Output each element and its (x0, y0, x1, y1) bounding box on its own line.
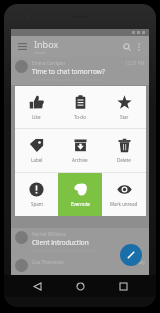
button[interactable]: Like (15, 86, 58, 128)
button[interactable]: Compose (120, 244, 142, 266)
staticText: Inbox (34, 38, 59, 50)
staticText: 12:37 PM (125, 60, 145, 66)
button[interactable]: Recents (116, 279, 130, 293)
button[interactable]: More options (133, 41, 144, 52)
button[interactable]: Star (102, 86, 146, 128)
staticText: Gmail (34, 50, 45, 55)
staticText: Label (31, 157, 43, 163)
button[interactable]: Label (15, 129, 58, 172)
button[interactable]: Emma Carrigan (15, 60, 145, 82)
staticText: Delete (117, 157, 131, 163)
staticText: Archive (72, 157, 88, 163)
button[interactable]: Harriet Williams (15, 231, 145, 253)
button[interactable]: Back (30, 279, 44, 293)
button[interactable]: Home (73, 279, 87, 293)
staticText: Star (120, 114, 129, 120)
button[interactable]: Lisa Thompson (15, 259, 145, 272)
staticText: To-do (74, 114, 86, 120)
staticText: Spam (31, 201, 43, 207)
button[interactable]: Archive (58, 129, 102, 172)
button[interactable]: Mark unread (102, 173, 146, 216)
staticText: Like (32, 114, 41, 120)
button[interactable]: To-do (58, 86, 102, 128)
button[interactable]: Search (120, 40, 133, 53)
staticText: Client introduction (32, 238, 89, 247)
staticText: Harriet Williams (32, 231, 66, 237)
button[interactable]: Menu (16, 40, 29, 53)
staticText: Friday (132, 259, 145, 265)
staticText: Time to chat tomorrow? (32, 67, 105, 76)
button[interactable]: Spam (15, 173, 58, 216)
button[interactable]: Delete (102, 129, 146, 172)
staticText: Lisa Thompson (32, 259, 65, 265)
staticText: Mark unread (110, 201, 138, 207)
button[interactable]: Evernote (58, 173, 102, 216)
staticText: Evernote (71, 201, 90, 207)
staticText: Emma Carrigan (32, 60, 65, 66)
